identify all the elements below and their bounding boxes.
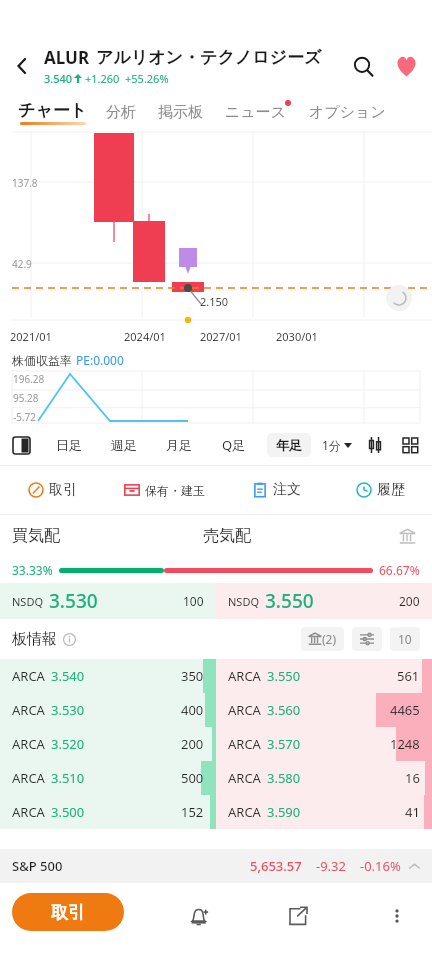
staticText: 板情報 xyxy=(12,630,57,649)
staticText: 注文 xyxy=(273,481,301,499)
button[interactable]: More options xyxy=(374,893,420,939)
staticText: ARCA xyxy=(12,701,45,719)
staticText: 66.67% xyxy=(379,562,420,578)
button[interactable]: Chart style xyxy=(0,425,42,465)
staticText: 3.530 xyxy=(51,701,85,719)
button[interactable]: Settings xyxy=(352,627,382,651)
button[interactable]: ARCA xyxy=(0,727,216,761)
staticText: 3.540 xyxy=(44,71,73,86)
staticText: 月足 xyxy=(166,437,192,453)
staticText: 1248 xyxy=(390,735,420,753)
staticText: 取引 xyxy=(49,481,77,499)
staticText: 2.150 xyxy=(200,294,229,309)
button[interactable]: Back xyxy=(0,44,44,88)
button[interactable]: 取引 xyxy=(12,893,124,931)
staticText: 3.520 xyxy=(51,735,85,753)
button[interactable]: ARCA xyxy=(216,795,432,829)
staticText: 3.540 xyxy=(51,667,85,685)
staticText: ARCA xyxy=(228,769,261,787)
button[interactable]: チャート xyxy=(12,97,94,128)
button[interactable]: ARCA xyxy=(0,795,216,829)
staticText: 500 xyxy=(181,769,204,787)
staticText: +55.26% xyxy=(125,71,169,86)
button[interactable]: S&P 500 xyxy=(0,849,432,883)
staticText: ARCA xyxy=(12,769,45,787)
button[interactable]: ARCA xyxy=(0,659,216,693)
button[interactable]: 分析 xyxy=(100,100,142,125)
staticText: ARCA xyxy=(12,735,45,753)
staticText: ARCA xyxy=(228,735,261,753)
staticText: 株価収益率 xyxy=(12,353,72,368)
button[interactable]: 注文 xyxy=(224,466,328,514)
staticText: 152 xyxy=(181,803,204,821)
button[interactable]: Share xyxy=(275,893,321,939)
button[interactable]: 日足 xyxy=(42,425,96,465)
staticText: 100 xyxy=(183,593,204,609)
button[interactable]: ARCA xyxy=(216,659,432,693)
staticText: 3.590 xyxy=(267,803,301,821)
staticText: 2024/01 xyxy=(124,329,166,344)
staticText: アルリオン・テクノロジーズ xyxy=(96,47,322,68)
button[interactable]: 保有・建玉 xyxy=(104,466,224,514)
staticText: 2021/01 xyxy=(10,329,52,344)
button[interactable]: Candles xyxy=(358,425,392,465)
staticText: ニュース xyxy=(225,103,287,122)
button[interactable]: 年足 xyxy=(261,425,316,465)
staticText: 10 xyxy=(398,631,412,647)
staticText: +1.260 xyxy=(85,71,120,86)
staticText: 400 xyxy=(181,701,204,719)
staticText: ARCA xyxy=(12,803,45,821)
staticText: 掲示板 xyxy=(158,103,203,122)
staticText: 3.580 xyxy=(267,769,301,787)
staticText: 350 xyxy=(181,667,204,685)
button[interactable]: Search xyxy=(342,45,384,87)
staticText: 保有・建玉 xyxy=(145,483,205,498)
staticText: 買気配 xyxy=(12,526,203,546)
button[interactable]: ARCA xyxy=(216,727,432,761)
button[interactable]: 履歴 xyxy=(328,466,432,514)
staticText: ARCA xyxy=(228,667,261,685)
button[interactable]: 月足 xyxy=(151,425,206,465)
button[interactable]: Favorite xyxy=(384,44,428,88)
staticText: 3.560 xyxy=(267,701,301,719)
staticText: オプション xyxy=(309,103,386,122)
button[interactable]: 取引 xyxy=(0,466,104,514)
staticText: 41 xyxy=(405,803,420,821)
staticText: 日足 xyxy=(56,437,82,453)
staticText: ALUR xyxy=(44,46,90,69)
button[interactable]: 1分 xyxy=(316,437,358,453)
staticText: 137.8 xyxy=(12,176,38,190)
button[interactable]: ニュース xyxy=(219,100,293,125)
staticText: -0.16% xyxy=(360,857,401,875)
staticText: 取引 xyxy=(51,902,85,923)
staticText: -5.72 xyxy=(13,410,37,424)
staticText: 200 xyxy=(181,735,204,753)
button[interactable]: ARCA xyxy=(0,693,216,727)
button[interactable]: ARCA xyxy=(0,761,216,795)
staticText: 履歴 xyxy=(377,481,405,499)
staticText: 200 xyxy=(399,593,420,609)
staticText: NSDQ xyxy=(12,594,44,609)
staticText: 3.500 xyxy=(51,803,85,821)
staticText: 3.570 xyxy=(267,735,301,753)
staticText: チャート xyxy=(18,100,88,121)
button[interactable]: Q足 xyxy=(206,425,261,465)
staticText: 95.28 xyxy=(13,391,39,405)
button[interactable]: ARCA xyxy=(216,761,432,795)
staticText: NSDQ xyxy=(228,594,260,609)
button[interactable]: Alert xyxy=(176,893,222,939)
staticText: Q足 xyxy=(222,436,246,454)
button[interactable]: NSDQ xyxy=(216,583,432,619)
button[interactable]: 掲示板 xyxy=(152,100,209,125)
button[interactable]: ARCA xyxy=(216,693,432,727)
button[interactable]: Fullscreen xyxy=(392,425,428,465)
button[interactable]: 10 xyxy=(390,627,420,651)
staticText: 3.550 xyxy=(267,667,301,685)
staticText: ARCA xyxy=(228,803,261,821)
button[interactable]: (2) xyxy=(301,627,344,651)
button[interactable]: 週足 xyxy=(96,425,151,465)
button[interactable]: NSDQ xyxy=(0,583,216,619)
button[interactable]: オプション xyxy=(303,100,392,125)
button[interactable]: Exchanges xyxy=(394,523,420,549)
staticText: 4465 xyxy=(390,701,420,719)
